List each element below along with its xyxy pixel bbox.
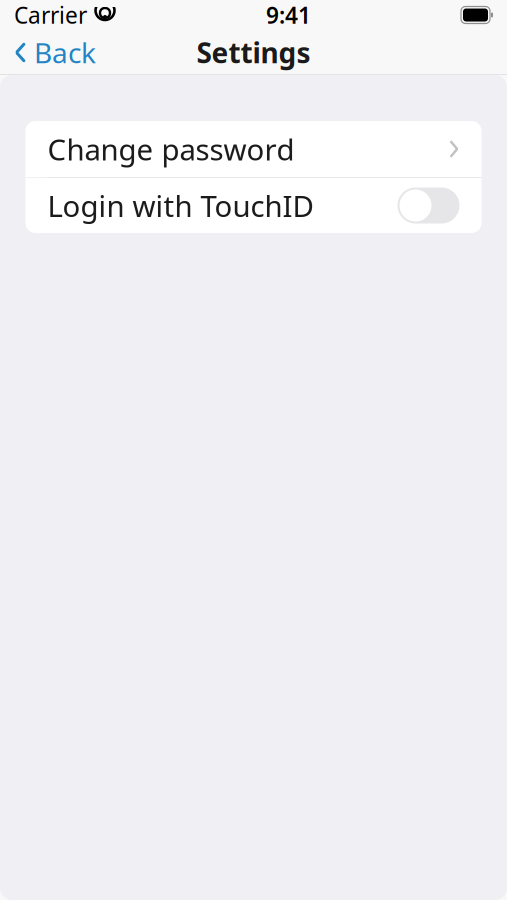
staticText: Login with TouchID bbox=[47, 186, 313, 225]
staticText: Back bbox=[34, 34, 96, 71]
staticText: Settings bbox=[196, 34, 310, 71]
staticText: 9:41 bbox=[266, 0, 311, 30]
button[interactable]: Change password bbox=[25, 121, 481, 177]
button[interactable]: Back bbox=[0, 30, 110, 75]
button[interactable]: Login with TouchID bbox=[25, 178, 481, 233]
staticText: Change password bbox=[47, 129, 294, 168]
staticText: Carrier bbox=[14, 0, 87, 30]
